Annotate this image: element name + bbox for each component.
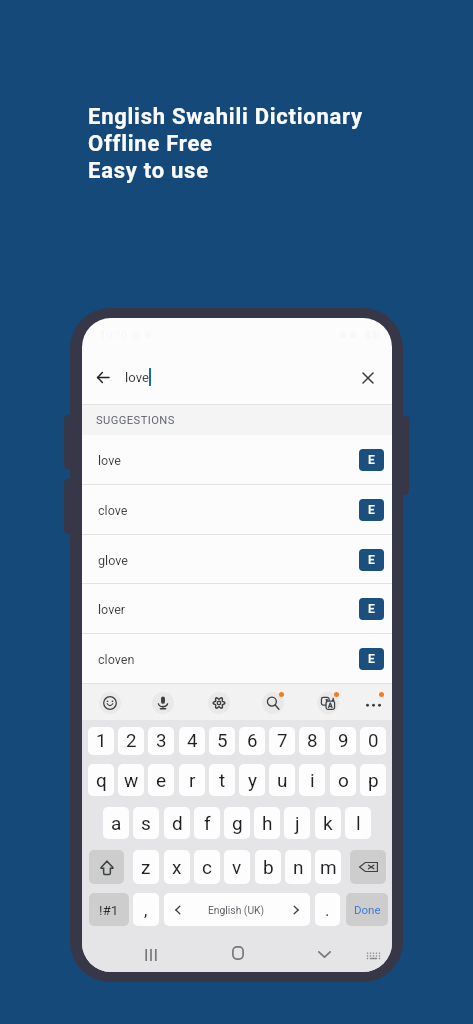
staticText: t — [219, 769, 226, 791]
staticText: 9 — [338, 730, 349, 752]
button[interactable]: Search — [262, 692, 284, 714]
button[interactable]: l — [345, 807, 371, 839]
button[interactable]: Emoji — [99, 692, 121, 714]
button[interactable]: lover — [82, 584, 392, 634]
button[interactable]: Voice input — [152, 692, 174, 714]
button[interactable]: More options — [362, 692, 384, 714]
button[interactable]: Clear search — [363, 373, 373, 383]
staticText: k — [323, 812, 333, 834]
button[interactable]: Done — [346, 893, 388, 926]
button[interactable]: f — [194, 807, 220, 839]
button[interactable]: 4 — [179, 727, 205, 755]
staticText: Offline Free — [88, 131, 213, 158]
staticText: i — [310, 769, 315, 791]
button[interactable]: p — [360, 764, 386, 796]
staticText: love — [125, 370, 149, 385]
staticText: z — [141, 856, 151, 878]
button[interactable]: 9 — [330, 727, 356, 755]
staticText: clove — [98, 503, 128, 518]
staticText: . — [325, 900, 330, 920]
staticText: E — [368, 503, 375, 517]
staticText: u — [277, 769, 288, 791]
button[interactable]: !#1 — [89, 893, 129, 926]
button[interactable]: w — [118, 764, 144, 796]
button[interactable]: Back — [97, 372, 109, 383]
button[interactable]: 1 — [88, 727, 114, 755]
button[interactable]: m — [315, 850, 341, 884]
button[interactable]: cloven — [82, 634, 392, 684]
button[interactable]: 3 — [148, 727, 174, 755]
button[interactable]: 6 — [239, 727, 265, 755]
staticText: 0 — [368, 730, 379, 752]
button[interactable]: Shift — [89, 850, 124, 884]
staticText: e — [156, 769, 167, 791]
staticText: 3 — [156, 730, 167, 752]
button[interactable]: n — [285, 850, 311, 884]
staticText: 5 — [217, 730, 228, 752]
button[interactable]: Hide keyboard — [308, 938, 341, 971]
button[interactable]: q — [88, 764, 114, 796]
staticText: r — [189, 769, 196, 791]
button[interactable]: glove — [82, 535, 392, 585]
staticText: w — [124, 769, 139, 791]
button[interactable]: b — [255, 850, 281, 884]
staticText: g — [232, 812, 243, 834]
button[interactable]: r — [179, 764, 205, 796]
button[interactable]: 7 — [269, 727, 295, 755]
staticText: E — [368, 553, 375, 567]
staticText: j — [295, 812, 300, 834]
button[interactable]: k — [315, 807, 341, 839]
staticText: glove — [98, 553, 128, 568]
button[interactable]: a — [103, 807, 129, 839]
button[interactable]: s — [133, 807, 159, 839]
button[interactable]: 8 — [299, 727, 325, 755]
button[interactable]: . — [315, 893, 340, 926]
staticText: 1 — [96, 730, 107, 752]
button[interactable]: t — [209, 764, 235, 796]
button[interactable]: h — [254, 807, 280, 839]
staticText: l — [356, 812, 361, 834]
staticText: c — [202, 856, 212, 878]
button[interactable]: Backspace — [350, 850, 386, 884]
staticText: cloven — [98, 652, 135, 667]
button[interactable]: clove — [82, 485, 392, 535]
button[interactable]: English (UK) — [164, 893, 310, 926]
button[interactable]: j — [284, 807, 310, 839]
button[interactable]: 5 — [209, 727, 235, 755]
button[interactable]: d — [164, 807, 190, 839]
staticText: m — [320, 856, 337, 878]
button[interactable]: 2 — [118, 727, 144, 755]
staticText: E — [368, 453, 375, 467]
button[interactable]: i — [299, 764, 325, 796]
button[interactable]: Recent apps — [135, 939, 167, 971]
button[interactable]: Settings — [208, 692, 230, 714]
button[interactable]: x — [164, 850, 190, 884]
staticText: lover — [98, 602, 126, 617]
button[interactable]: o — [330, 764, 356, 796]
staticText: s — [141, 812, 151, 834]
staticText: d — [172, 812, 183, 834]
staticText: b — [263, 856, 274, 878]
staticText: 8 — [307, 730, 318, 752]
staticText: 2 — [126, 730, 137, 752]
staticText: 6 — [247, 730, 258, 752]
button[interactable]: c — [194, 850, 220, 884]
button[interactable]: , — [133, 893, 159, 926]
staticText: SUGGESTIONS — [96, 414, 175, 427]
button[interactable]: Home — [222, 937, 254, 969]
button[interactable]: love — [82, 435, 392, 485]
button[interactable]: Translate — [317, 692, 339, 714]
button[interactable]: 0 — [360, 727, 386, 755]
staticText: n — [293, 856, 304, 878]
button[interactable]: Switch keyboard — [358, 940, 389, 972]
button[interactable]: g — [224, 807, 250, 839]
button[interactable]: z — [133, 850, 159, 884]
button[interactable]: v — [224, 850, 250, 884]
button[interactable]: y — [239, 764, 265, 796]
button[interactable]: e — [148, 764, 174, 796]
staticText: E — [368, 602, 375, 616]
staticText: v — [232, 856, 242, 878]
staticText: a — [111, 812, 122, 834]
button[interactable]: u — [269, 764, 295, 796]
